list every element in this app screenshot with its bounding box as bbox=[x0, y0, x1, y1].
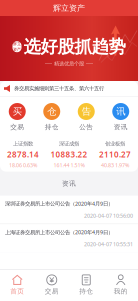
staticText: 券交易实施细则第三十五条、第六十五行 bbox=[14, 85, 104, 92]
staticText: 资讯 bbox=[62, 179, 76, 188]
button[interactable]: 仓 bbox=[34, 103, 69, 131]
staticText: 创业板指 bbox=[105, 140, 125, 147]
button[interactable]: 券交易实施细则第三十五条、第六十五行 bbox=[0, 81, 138, 96]
button[interactable]: 讯 bbox=[103, 103, 138, 131]
staticText: 资讯 bbox=[114, 123, 128, 131]
staticText: 选好股抓趋势 bbox=[23, 36, 125, 57]
staticText: 告 bbox=[82, 106, 91, 117]
button[interactable]: 首页 bbox=[0, 270, 34, 300]
staticText: 我的 bbox=[114, 287, 128, 295]
staticText: 首页 bbox=[10, 287, 24, 295]
staticText: 讯 bbox=[116, 106, 125, 117]
staticText: 上海证券交易所上市公司公告（2020年4月9日） bbox=[5, 229, 113, 236]
staticText: 资产 bbox=[13, 47, 21, 52]
staticText: 辉立 bbox=[13, 42, 21, 46]
staticText: 10883.22 bbox=[50, 149, 87, 160]
staticText: 公告 bbox=[79, 123, 93, 131]
staticText: 持仓 bbox=[45, 123, 59, 131]
button[interactable]: 上证指数 bbox=[0, 140, 46, 169]
button[interactable]: 深圳证券交易所上市公司公告（2020年4月9日） bbox=[0, 196, 138, 224]
button[interactable]: 深证成指 bbox=[46, 140, 92, 169]
button[interactable]: 我的 bbox=[103, 270, 138, 300]
button[interactable]: 买 bbox=[0, 103, 34, 131]
button[interactable]: 创业板指 bbox=[92, 140, 138, 169]
staticText: 161.44 1.51% bbox=[53, 162, 84, 169]
staticText: 深证成指 bbox=[59, 140, 79, 147]
button[interactable]: 持仓 bbox=[69, 270, 103, 300]
staticText: 交易 bbox=[45, 287, 59, 295]
button[interactable]: 告 bbox=[69, 103, 103, 131]
staticText: 持仓 bbox=[79, 287, 93, 295]
staticText: 2110.27 bbox=[99, 149, 131, 160]
staticText: 2020-04-07 10:55:31 bbox=[84, 241, 133, 248]
staticText: 2020-04-07 10:56:00 bbox=[84, 212, 133, 219]
staticText: 交易 bbox=[10, 123, 24, 131]
staticText: 深圳证券交易所上市公司公告（2020年4月9日） bbox=[5, 200, 113, 207]
staticText: 18.06 0.63% bbox=[9, 162, 37, 169]
staticText: 仓 bbox=[47, 106, 56, 117]
staticText: 精选优质个股 bbox=[54, 60, 84, 67]
button[interactable]: 交易 bbox=[34, 270, 69, 300]
staticText: 上证指数 bbox=[13, 140, 33, 147]
staticText: 40.83 1.97% bbox=[101, 162, 129, 169]
staticText: 辉立资产 bbox=[53, 3, 85, 13]
staticText: 买 bbox=[13, 106, 22, 117]
button[interactable]: 上海证券交易所上市公司公告（2020年4月9日） bbox=[0, 224, 138, 252]
staticText: 2878.14 bbox=[7, 149, 39, 160]
